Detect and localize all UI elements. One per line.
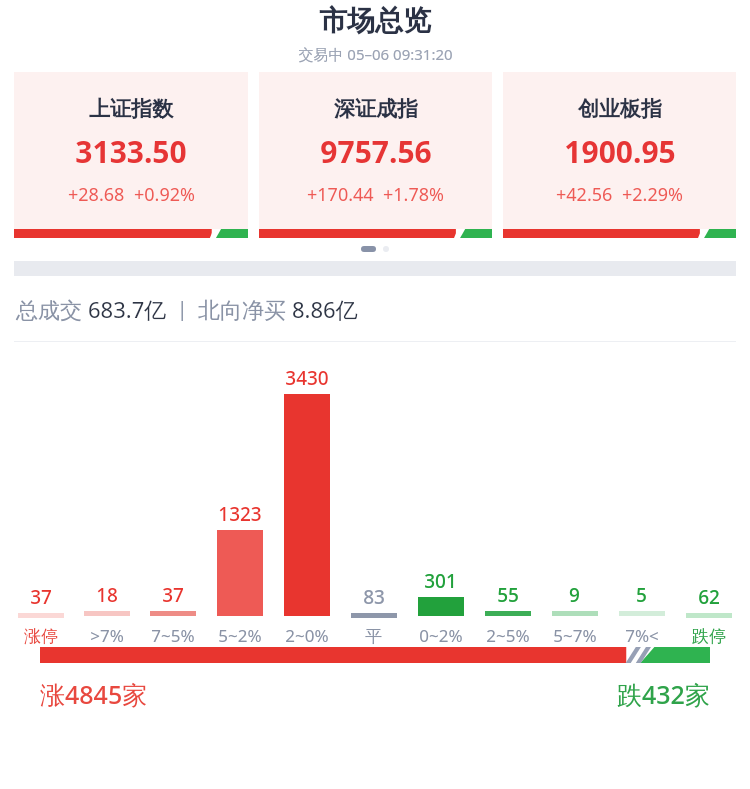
staticText: 5~7% <box>553 624 597 647</box>
staticText: 37 <box>162 582 184 608</box>
button[interactable]: 55 <box>474 365 541 647</box>
staticText: +28.68 <box>68 182 125 207</box>
button[interactable]: 创业板指 <box>503 72 736 238</box>
staticText: +0.92% <box>134 182 195 207</box>
staticText: 9757.56 <box>320 131 432 172</box>
button[interactable]: 62 <box>675 367 742 647</box>
staticText: +2.29% <box>622 182 683 207</box>
button[interactable]: 5 <box>608 365 675 647</box>
staticText: 深证成指 <box>334 96 418 122</box>
other: 涨跌比例 <box>40 647 710 663</box>
staticText: 涨停 <box>24 626 58 647</box>
staticText: 7~5% <box>151 624 195 647</box>
staticText: 7%< <box>625 624 659 647</box>
staticText: | <box>167 296 198 322</box>
staticText: 37 <box>30 584 52 610</box>
staticText: 跌停 <box>692 626 726 647</box>
staticText: 1900.95 <box>564 131 676 172</box>
staticText: 上证指数 <box>89 96 173 122</box>
staticText: 0~2% <box>419 624 463 647</box>
staticText: 683.7亿 <box>88 294 167 324</box>
staticText: 2~5% <box>486 624 530 647</box>
button[interactable]: 18 <box>74 365 140 647</box>
button[interactable]: 1323 <box>206 365 273 647</box>
staticText: 创业板指 <box>578 96 662 122</box>
staticText: 北向净买 <box>198 294 292 324</box>
staticText: 3133.50 <box>75 131 187 172</box>
button[interactable]: 9 <box>541 365 608 647</box>
staticText: 83 <box>363 584 385 610</box>
button[interactable]: 301 <box>407 365 474 647</box>
staticText: 18 <box>96 582 118 608</box>
staticText: +170.44 <box>307 182 374 207</box>
button[interactable]: 3430 <box>273 365 340 647</box>
staticText: 平 <box>365 626 382 647</box>
staticText: 9 <box>569 582 580 608</box>
staticText: +42.56 <box>556 182 613 207</box>
staticText: 总成交 <box>16 294 88 324</box>
button[interactable]: 上证指数 <box>14 72 248 238</box>
staticText: 1323 <box>218 501 262 527</box>
staticText: +1.78% <box>383 182 444 207</box>
staticText: 301 <box>424 568 457 594</box>
staticText: 5~2% <box>218 624 262 647</box>
button[interactable]: 83 <box>340 367 407 647</box>
staticText: 5 <box>636 582 647 608</box>
staticText: 3430 <box>285 365 329 391</box>
staticText: 市场总览 <box>319 3 431 38</box>
staticText: 2~0% <box>285 624 329 647</box>
staticText: >7% <box>90 624 124 647</box>
button[interactable]: 37 <box>140 365 206 647</box>
staticText: 62 <box>698 584 720 610</box>
staticText: 跌432家 <box>617 677 710 711</box>
staticText: 55 <box>497 582 519 608</box>
staticText: 涨4845家 <box>40 677 148 711</box>
staticText: 交易中 05–06 09:31:20 <box>298 44 453 64</box>
button[interactable]: 37 <box>8 367 74 647</box>
staticText: 8.86亿 <box>292 294 358 324</box>
button[interactable]: 深证成指 <box>259 72 492 238</box>
